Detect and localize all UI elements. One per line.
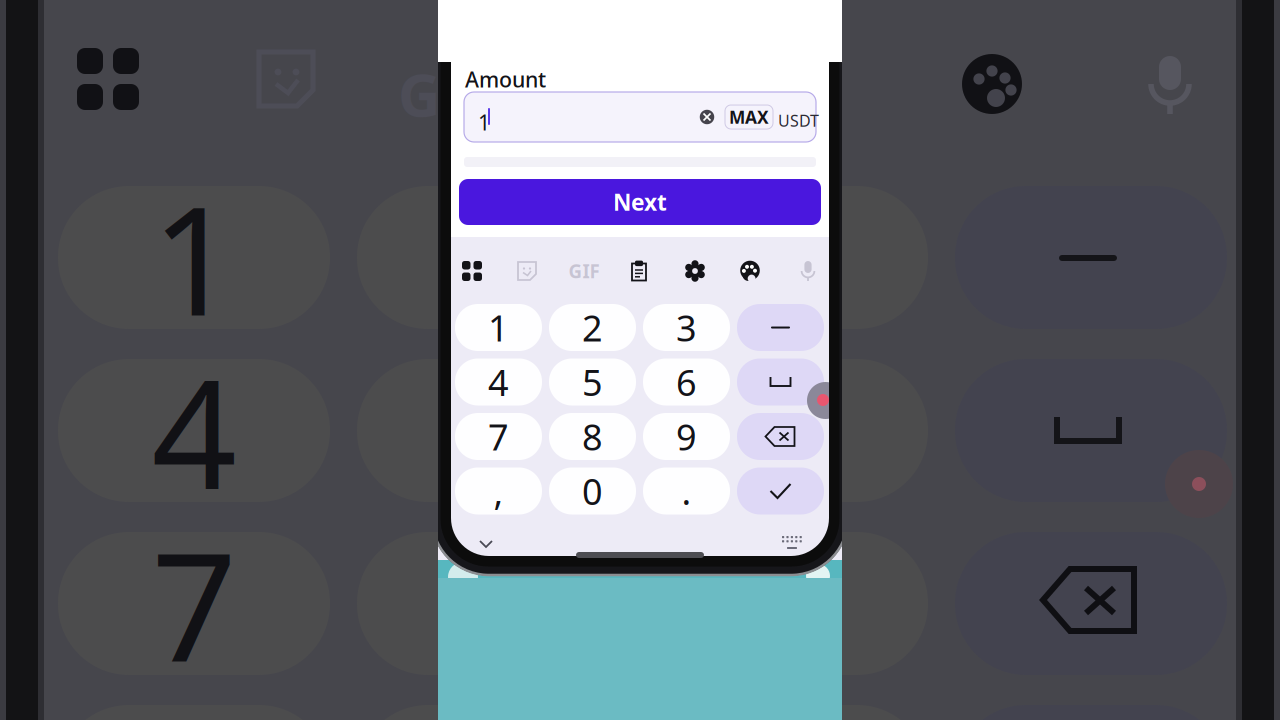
button[interactable]: Voice input (790, 254, 826, 288)
staticText: Amount (465, 65, 546, 93)
button[interactable]: Clear amount (694, 104, 720, 130)
staticText: GIF (398, 55, 495, 133)
button[interactable]: 8 (549, 413, 636, 460)
button[interactable]: Space (737, 358, 824, 405)
button[interactable]: 0 (549, 467, 636, 514)
button[interactable]: Settings (677, 254, 713, 288)
button[interactable]: 1 (455, 304, 542, 351)
button[interactable]: , (455, 467, 542, 514)
button[interactable]: Next (459, 179, 821, 225)
staticText: GIF (568, 259, 599, 283)
button[interactable]: Hide keyboard (782, 536, 804, 552)
button[interactable]: 2 (549, 304, 636, 351)
button[interactable]: Done (737, 467, 824, 514)
staticText: 6 (676, 358, 697, 406)
staticText: 9 (676, 413, 697, 460)
staticText: 4 (488, 358, 509, 406)
staticText: 1 (488, 304, 509, 351)
staticText: 0 (582, 467, 603, 515)
button[interactable]: 5 (549, 358, 636, 405)
button[interactable]: 9 (643, 413, 730, 460)
button[interactable]: Minus (737, 304, 824, 351)
button[interactable]: 3 (643, 304, 730, 351)
button[interactable]: Clipboard (621, 254, 657, 288)
staticText: 8 (582, 413, 603, 460)
button[interactable]: . (643, 467, 730, 514)
staticText: MAX (729, 105, 769, 128)
button[interactable]: Collapse keyboard (477, 535, 495, 553)
button[interactable]: 4 (455, 358, 542, 405)
staticText: 7 (488, 413, 509, 460)
staticText: . (681, 467, 691, 515)
button[interactable]: Delete (737, 413, 824, 460)
staticText: 5 (582, 358, 603, 406)
staticText: Next (613, 187, 667, 217)
button[interactable]: Themes (732, 254, 768, 288)
staticText: 2 (582, 304, 603, 351)
staticText: , (493, 467, 503, 515)
button[interactable]: Stickers (509, 254, 545, 288)
button[interactable]: MAX (725, 105, 773, 129)
staticText: USDT (778, 110, 819, 131)
staticText: 1 (151, 158, 236, 357)
button[interactable]: 7 (455, 413, 542, 460)
button[interactable]: GIF (566, 254, 602, 288)
staticText: 1 (478, 108, 490, 136)
button[interactable]: 6 (643, 358, 730, 405)
staticText: 3 (676, 304, 697, 351)
staticText: 4 (151, 331, 236, 530)
button[interactable]: Keyboard modes (454, 254, 490, 288)
staticText: 7 (151, 504, 236, 703)
